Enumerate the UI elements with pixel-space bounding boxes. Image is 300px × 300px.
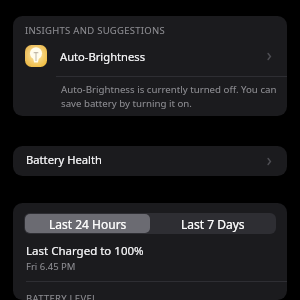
button[interactable]: Battery Health [13,146,287,176]
button[interactable]: Last 24 Hours [25,214,150,233]
button[interactable]: Last 7 Days [150,214,275,233]
staticText: Fri 6.45 PM [26,260,76,273]
button[interactable]: Auto-Brightness [13,42,287,70]
staticText: BATTERY LEVEL [26,292,98,300]
staticText: Battery Health [26,152,266,167]
staticText: INSIGHTS AND SUGGESTIONS [25,24,166,37]
staticText: Last Charged to 100% [26,243,144,259]
staticText: Last 24 Hours [49,216,127,232]
staticText: Auto-Brightness [60,49,266,64]
staticText: Auto-Brightness is currently turned off.… [61,83,285,109]
staticText: Last 7 Days [181,216,245,232]
